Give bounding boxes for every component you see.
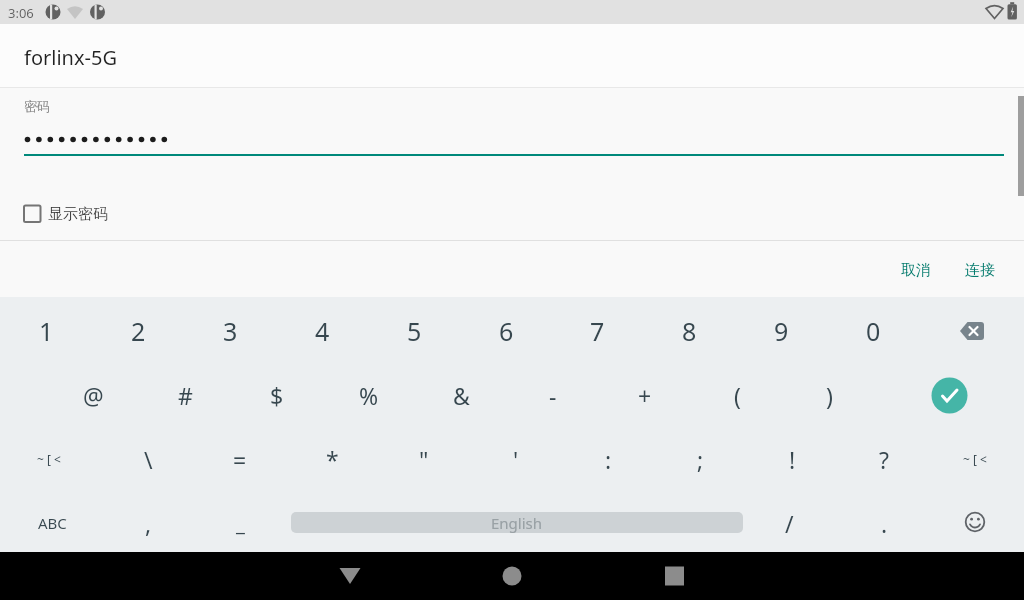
button[interactable]: . bbox=[838, 493, 930, 553]
button[interactable]: 1 bbox=[0, 301, 92, 361]
staticText: _ bbox=[236, 510, 245, 537]
staticText: - bbox=[549, 380, 557, 411]
button[interactable] bbox=[488, 552, 536, 600]
staticText: ) bbox=[826, 380, 833, 411]
button[interactable]: $ bbox=[231, 365, 323, 425]
staticText: ' bbox=[513, 444, 519, 475]
staticText: 8 bbox=[682, 314, 697, 348]
staticText: ; bbox=[697, 444, 704, 475]
button[interactable] bbox=[326, 552, 374, 600]
staticText: ( bbox=[734, 380, 741, 411]
staticText: 9 bbox=[774, 314, 789, 348]
button[interactable] bbox=[876, 363, 1022, 427]
staticText: . bbox=[881, 508, 888, 539]
staticText: 2 bbox=[131, 314, 146, 348]
button[interactable]: ABC bbox=[6, 493, 98, 553]
button[interactable] bbox=[650, 552, 698, 600]
staticText: 6 bbox=[499, 314, 514, 348]
staticText: ? bbox=[879, 444, 889, 475]
button[interactable]: _ bbox=[194, 493, 286, 553]
staticText: 连接 bbox=[965, 261, 995, 280]
button[interactable]: ( bbox=[691, 365, 783, 425]
button[interactable]: & bbox=[415, 365, 507, 425]
staticText: 7 bbox=[590, 314, 605, 348]
staticText: 0 bbox=[866, 314, 881, 348]
staticText: # bbox=[178, 380, 193, 411]
staticText: 密码 bbox=[24, 98, 50, 114]
staticText: 3 bbox=[223, 314, 238, 348]
staticText: \ bbox=[144, 444, 153, 475]
button[interactable]: 9 bbox=[735, 301, 827, 361]
button[interactable]: " bbox=[378, 429, 470, 489]
staticText: & bbox=[453, 380, 470, 411]
staticText: , bbox=[145, 508, 152, 539]
staticText: 1 bbox=[39, 314, 54, 348]
button[interactable]: / bbox=[743, 493, 835, 553]
button[interactable]: ~ [ < bbox=[929, 429, 1021, 489]
button[interactable]: + bbox=[599, 365, 691, 425]
staticText: @ bbox=[83, 380, 104, 411]
staticText: 4 bbox=[315, 314, 330, 348]
staticText: ABC bbox=[38, 513, 67, 533]
button[interactable]: ) bbox=[783, 365, 875, 425]
staticText: " bbox=[419, 444, 429, 475]
staticText: : bbox=[605, 444, 612, 475]
button[interactable]: ' bbox=[470, 429, 562, 489]
staticText: % bbox=[359, 380, 379, 411]
button[interactable]: ? bbox=[838, 429, 930, 489]
staticText: 5 bbox=[407, 314, 422, 348]
button[interactable]: * bbox=[286, 429, 378, 489]
staticText: 取消 bbox=[901, 261, 931, 280]
staticText: English bbox=[491, 513, 543, 533]
staticText: ! bbox=[789, 444, 796, 475]
staticText: * bbox=[326, 444, 339, 475]
button[interactable]: English bbox=[291, 512, 743, 533]
button[interactable]: ; bbox=[654, 429, 746, 489]
button[interactable]: 3 bbox=[184, 301, 276, 361]
staticText: ~ [ < bbox=[37, 451, 61, 467]
button[interactable]: 8 bbox=[643, 301, 735, 361]
staticText: / bbox=[785, 508, 794, 539]
staticText: = bbox=[233, 444, 247, 475]
button[interactable]: @ bbox=[47, 365, 139, 425]
button[interactable]: # bbox=[139, 365, 231, 425]
button[interactable]: 0 bbox=[827, 301, 919, 361]
button[interactable]: ! bbox=[746, 429, 838, 489]
staticText: ~ [ < bbox=[963, 451, 987, 467]
staticText: forlinx-5G bbox=[24, 44, 117, 71]
button[interactable] bbox=[16, 198, 166, 230]
button[interactable]: 4 bbox=[276, 301, 368, 361]
button[interactable]: 2 bbox=[92, 301, 184, 361]
button[interactable]: 取消 bbox=[884, 250, 948, 290]
button[interactable]: ~ [ < bbox=[3, 429, 95, 489]
button[interactable]: = bbox=[194, 429, 286, 489]
button[interactable]: 连接 bbox=[948, 250, 1012, 290]
staticText: $ bbox=[270, 380, 284, 411]
button[interactable]: 6 bbox=[460, 301, 552, 361]
button[interactable] bbox=[929, 493, 1021, 553]
button[interactable]: 7 bbox=[551, 301, 643, 361]
button[interactable]: % bbox=[323, 365, 415, 425]
button[interactable]: \ bbox=[102, 429, 194, 489]
button[interactable]: : bbox=[562, 429, 654, 489]
staticText: 显示密码 bbox=[48, 205, 108, 224]
button[interactable]: 5 bbox=[368, 301, 460, 361]
staticText: + bbox=[638, 380, 652, 411]
button[interactable] bbox=[926, 301, 1018, 361]
staticText: 3:06 bbox=[8, 4, 34, 22]
button[interactable]: , bbox=[102, 493, 194, 553]
button[interactable]: - bbox=[507, 365, 599, 425]
